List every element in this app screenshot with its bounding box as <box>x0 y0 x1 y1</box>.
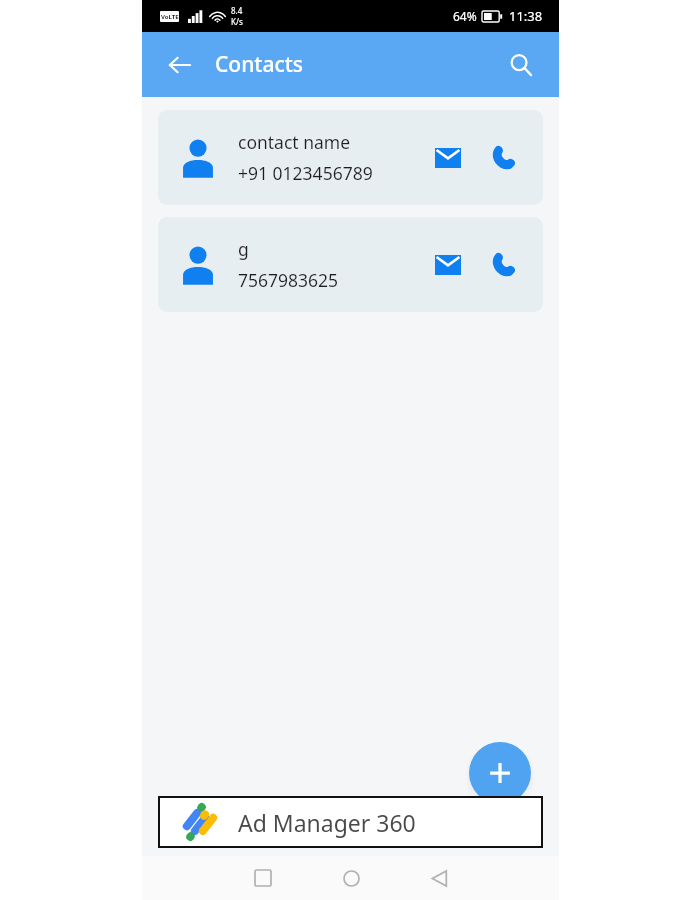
button[interactable]: Home <box>323 856 379 900</box>
staticText: 7567983625 <box>238 268 339 292</box>
button[interactable]: Add contact <box>469 742 531 804</box>
staticText: 11:38 <box>509 7 543 25</box>
button[interactable]: Recent apps <box>235 856 291 900</box>
button[interactable]: g <box>158 217 543 312</box>
button[interactable]: Ad Manager 360 <box>158 796 543 848</box>
button[interactable]: Call <box>483 137 525 179</box>
button[interactable]: Back <box>411 856 467 900</box>
button[interactable]: Search <box>501 45 541 85</box>
staticText: 8.4 <box>231 5 243 16</box>
button[interactable]: Send email <box>427 137 469 179</box>
button[interactable]: Call <box>483 244 525 286</box>
button[interactable]: Back <box>160 45 200 85</box>
staticText: K/s <box>231 16 243 27</box>
staticText: 64% <box>453 8 477 24</box>
staticText: Ad Manager 360 <box>238 807 416 838</box>
button[interactable]: contact name <box>158 110 543 205</box>
staticText: VoLTE <box>161 13 179 21</box>
staticText: contact name <box>238 130 351 154</box>
staticText: Contacts <box>215 50 303 79</box>
button[interactable]: Send email <box>427 244 469 286</box>
staticText: g <box>238 237 249 261</box>
staticText: +91 0123456789 <box>238 161 373 185</box>
